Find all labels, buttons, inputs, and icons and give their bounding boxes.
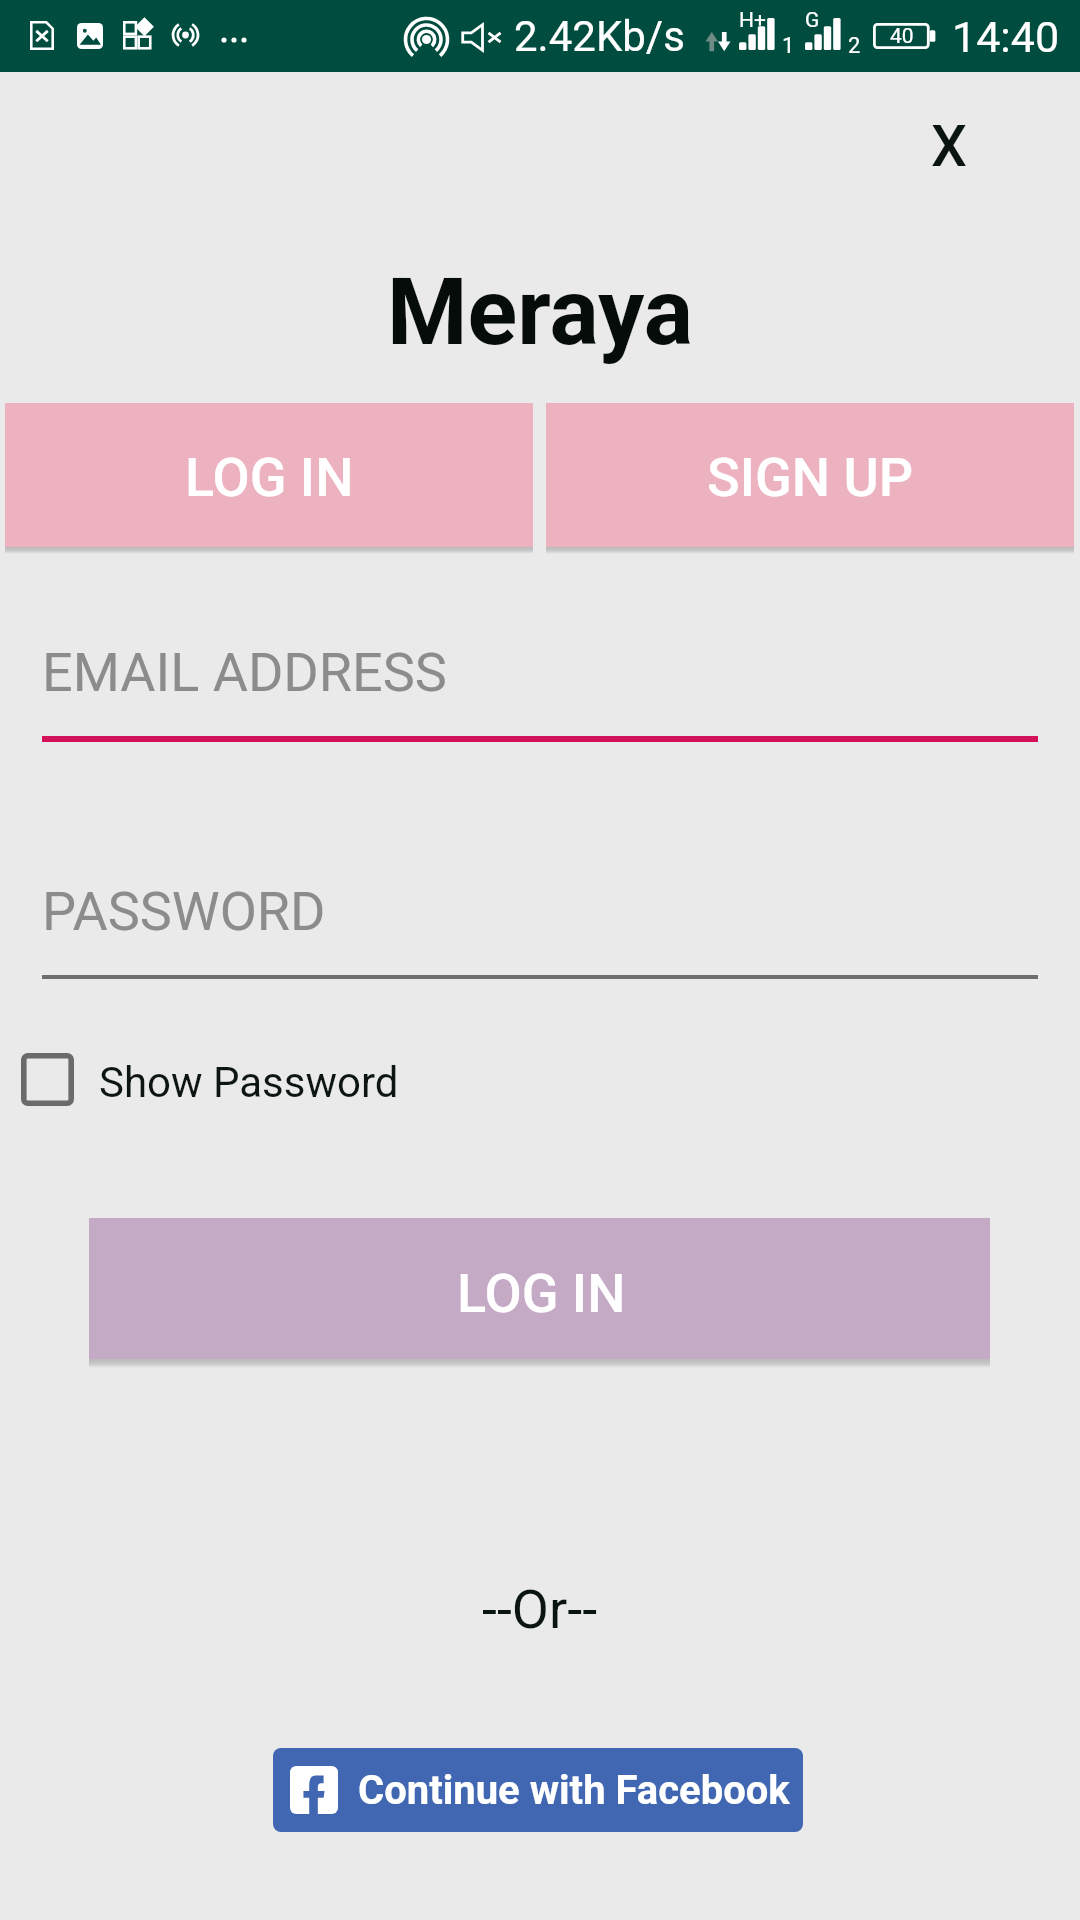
staticText: Continue with Facebook [358,1767,790,1814]
staticText: LOG IN [185,446,354,509]
staticText: --Or-- [482,1578,598,1641]
staticText: SIGN UP [707,446,914,509]
staticText: 14:40 [952,12,1060,62]
staticText: G [805,8,820,33]
staticText: 2 [848,33,861,59]
staticText: H+ [739,8,766,33]
staticText: Meraya [387,259,693,367]
button[interactable]: Close [905,102,993,190]
staticText: 2.42Kb/s [514,12,685,61]
staticText: 40 [890,24,914,49]
button[interactable]: Continue with Facebook [273,1748,803,1832]
button[interactable]: LOG IN [5,403,533,547]
staticText: 1 [782,33,795,59]
staticText: PASSWORD [42,880,326,943]
button[interactable]: Show Password [21,1046,399,1112]
button[interactable]: LOG IN [89,1218,990,1359]
staticText: EMAIL ADDRESS [42,641,447,704]
staticText: X [931,113,967,180]
staticText: LOG IN [457,1262,626,1325]
button[interactable]: SIGN UP [546,403,1074,547]
staticText: Show Password [99,1058,399,1107]
